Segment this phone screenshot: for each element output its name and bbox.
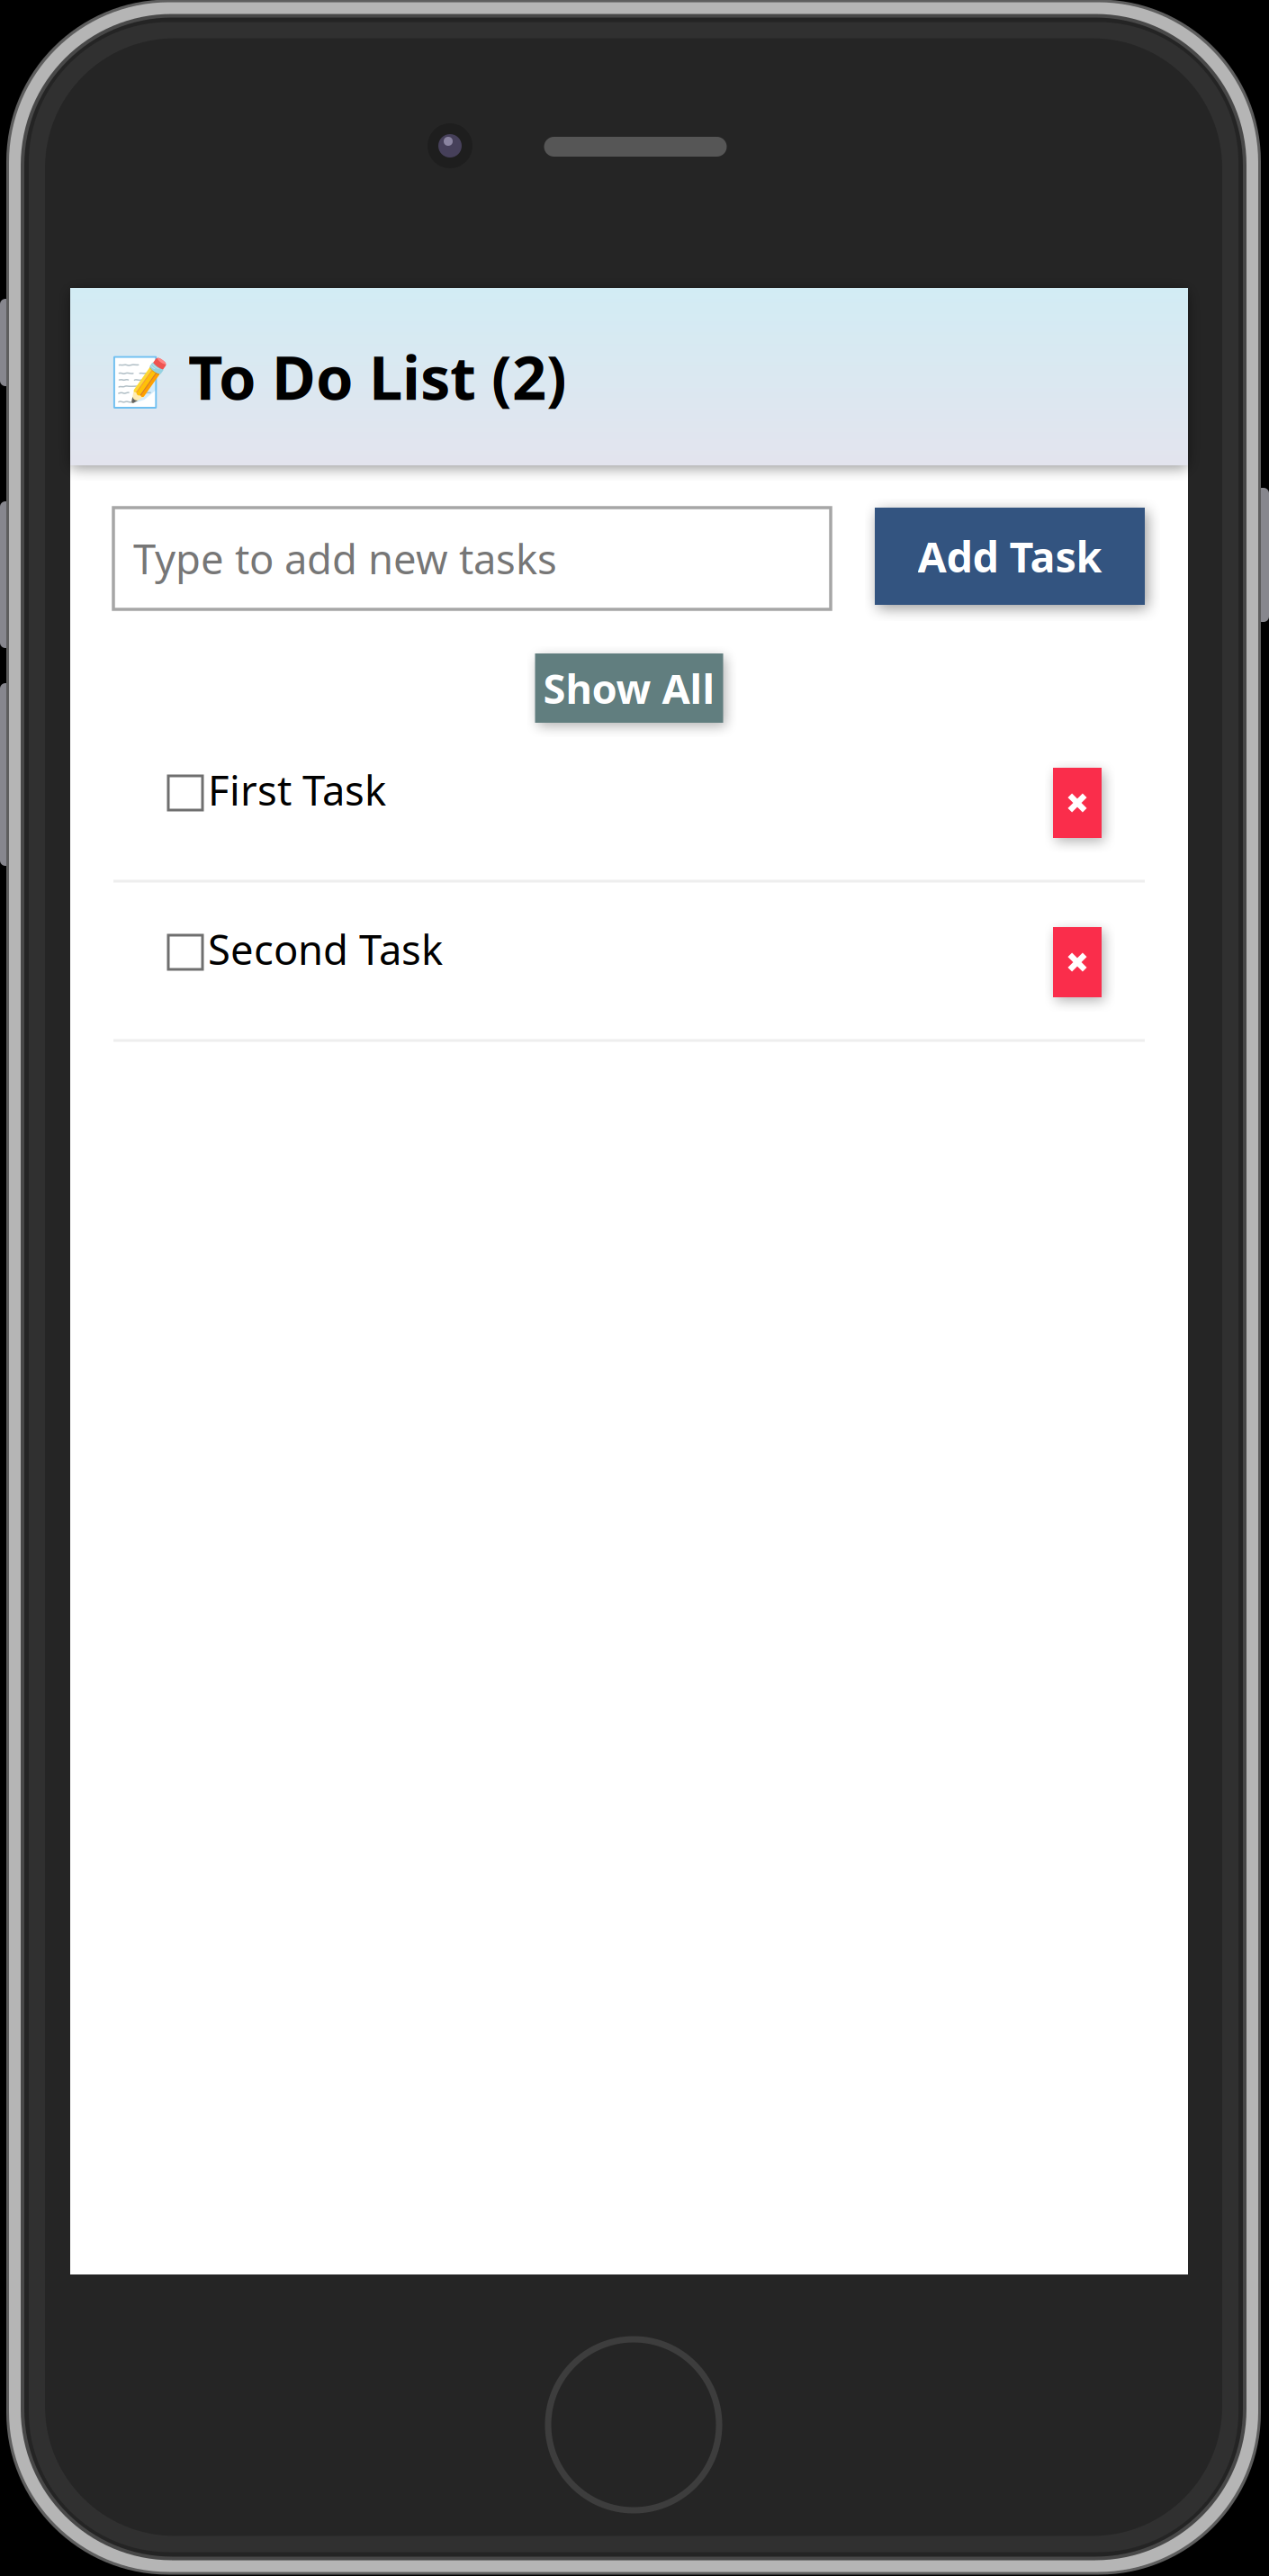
staticText: Second Task — [208, 922, 443, 976]
button[interactable]: Add Task — [875, 508, 1145, 605]
staticText: Type to add new tasks — [133, 531, 557, 586]
button[interactable]: Second Task — [168, 918, 933, 987]
button[interactable]: Delete First Task — [1053, 768, 1102, 838]
button[interactable]: Delete Second Task — [1053, 927, 1102, 997]
staticText: Show All — [543, 661, 715, 715]
staticText: Add Task — [918, 528, 1102, 584]
staticText: To Do List (2) — [188, 337, 567, 416]
button[interactable]: First Task — [168, 758, 933, 828]
staticText: 📝 — [110, 355, 169, 409]
button[interactable]: Type to add new tasks — [113, 508, 831, 609]
staticText: First Task — [208, 763, 386, 817]
button[interactable]: Show All — [535, 653, 723, 723]
